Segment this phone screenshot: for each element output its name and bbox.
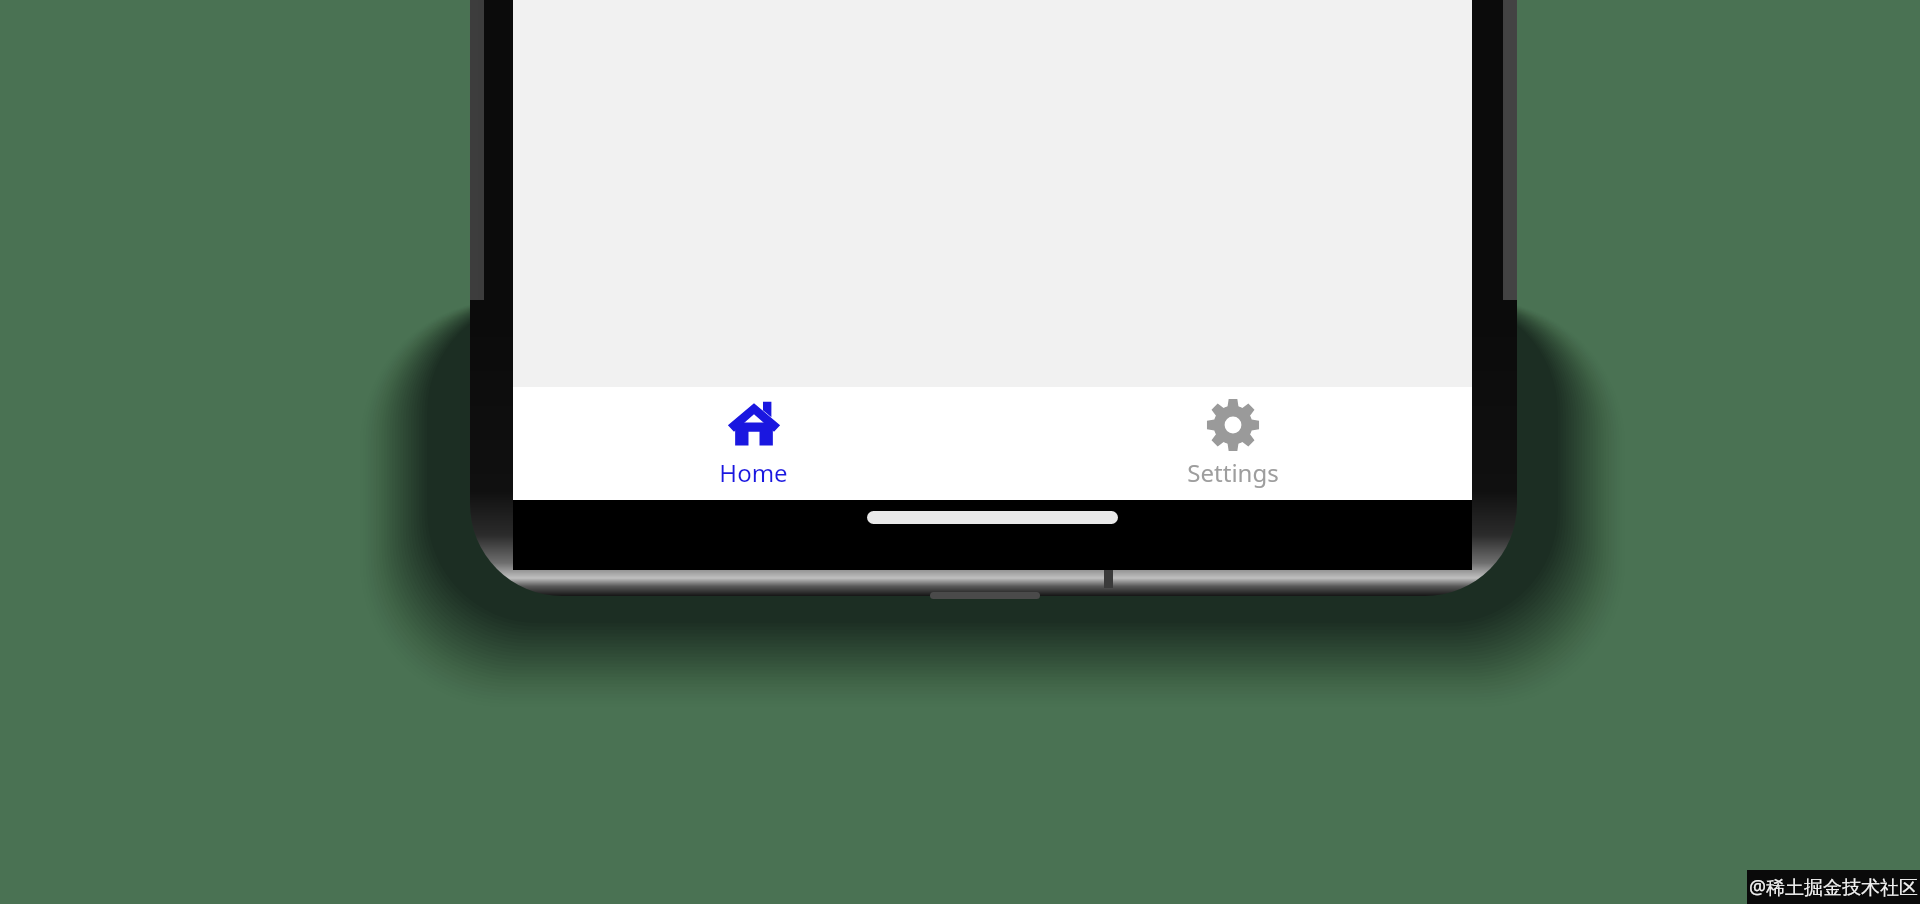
staticText: Settings (1187, 456, 1279, 489)
button[interactable]: Home (513, 387, 993, 500)
staticText: @稀土掘金技术社区 (1749, 874, 1919, 900)
other: Home gesture (867, 511, 1118, 524)
staticText: Home (719, 456, 788, 489)
button[interactable]: Settings (993, 387, 1472, 500)
